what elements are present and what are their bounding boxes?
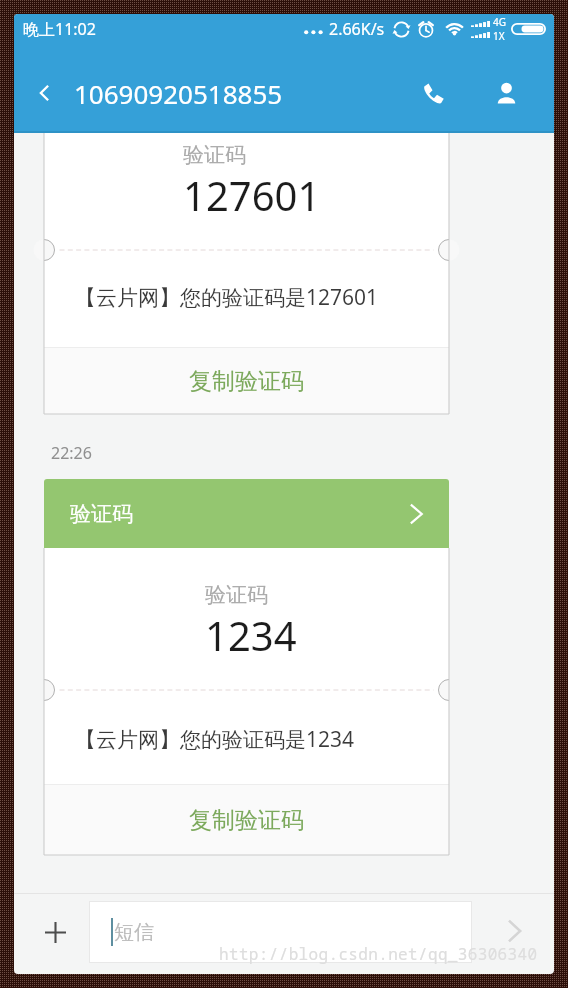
button[interactable]: Contact details <box>484 71 528 115</box>
staticText: 22:26 <box>51 442 92 464</box>
staticText: 1234 <box>205 608 297 662</box>
button[interactable]: 10690920518855 <box>74 71 304 115</box>
button[interactable]: Back <box>23 71 67 115</box>
staticText: 【云片网】您的验证码是1234 <box>75 725 355 754</box>
staticText: 短信 <box>114 920 154 945</box>
staticText: 【云片网】您的验证码是127601 <box>75 283 379 312</box>
staticText: 10690920518855 <box>74 76 283 111</box>
button[interactable]: Call <box>411 71 455 115</box>
staticText: 晚上11:02 <box>23 18 96 40</box>
staticText: http://blog.csdn.net/qq_36306340 <box>219 943 538 965</box>
button[interactable]: 验证码 <box>44 479 449 548</box>
button[interactable]: 复制验证码 <box>44 785 449 855</box>
staticText: 验证码 <box>70 501 133 527</box>
staticText: 4G <box>493 15 506 29</box>
staticText: 复制验证码 <box>189 806 304 835</box>
staticText: 验证码 <box>205 582 268 608</box>
staticText: 127601 <box>183 168 321 222</box>
staticText: 2.66K/s <box>329 18 385 40</box>
button[interactable]: 复制验证码 <box>44 348 449 414</box>
button[interactable]: Add attachment <box>33 910 77 954</box>
button[interactable]: 短信 <box>89 901 472 963</box>
staticText: 验证码 <box>183 142 246 168</box>
staticText: 1X <box>493 29 505 43</box>
button[interactable]: Send <box>492 909 536 953</box>
staticText: 复制验证码 <box>189 367 304 396</box>
